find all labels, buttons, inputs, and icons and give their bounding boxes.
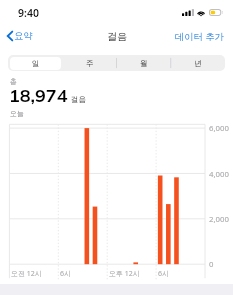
staticText: 총 [10, 77, 17, 86]
staticText: 주 [86, 59, 94, 68]
staticText: 걸음 [107, 30, 127, 43]
staticText: 오후 12시 [109, 269, 140, 279]
staticText: 9:40 [18, 6, 39, 20]
button[interactable]: 주 [63, 55, 117, 71]
staticText: 년 [194, 59, 202, 68]
staticText: 0 [209, 259, 214, 270]
staticText: 월 [140, 59, 148, 68]
button[interactable]: 월 [117, 55, 171, 71]
staticText: 오늘 [10, 109, 24, 118]
staticText: 4,000 [209, 169, 229, 180]
button[interactable]: 데이터 추가 [175, 30, 233, 43]
staticText: 6시 [60, 269, 72, 279]
button[interactable]: 요약 [0, 30, 39, 42]
staticText: 18,974 [9, 84, 68, 107]
staticText: 6,000 [209, 123, 229, 134]
staticText: 걸음 [71, 95, 86, 104]
staticText: 2,000 [209, 214, 229, 225]
button[interactable]: 년 [171, 55, 225, 71]
staticText: 6시 [158, 269, 170, 279]
staticText: 요약 [14, 30, 33, 42]
staticText: 오전 12시 [11, 269, 42, 279]
button[interactable]: 일 [8, 55, 63, 71]
staticText: 일 [32, 59, 40, 68]
